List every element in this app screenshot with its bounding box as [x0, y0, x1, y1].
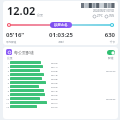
- button[interactable]: 8: [5, 89, 116, 92]
- staticText: 05'04": [51, 97, 58, 100]
- button[interactable]: 2: [5, 65, 116, 68]
- staticText: 00:27:44: [106, 69, 116, 72]
- staticText: 05'26": [51, 81, 58, 84]
- staticText: 平均配速: [6, 40, 17, 43]
- staticText: 11: [5, 101, 9, 104]
- staticText: 1: [5, 61, 9, 64]
- staticText: 05'11": [51, 65, 58, 68]
- staticText: 05'08": [51, 77, 58, 80]
- staticText: 05'16": [6, 31, 25, 39]
- staticText: 10: [5, 97, 9, 100]
- staticText: 630: [104, 31, 115, 39]
- button[interactable]: 12: [5, 105, 116, 108]
- staticText: 04'47": [51, 105, 58, 108]
- staticText: 2024/05/21 07:02: [93, 9, 115, 13]
- button[interactable]: 05'16": [6, 31, 43, 43]
- button[interactable]: 12.02: [3, 1, 118, 45]
- staticText: 12: [5, 105, 9, 108]
- staticText: 每公里配速: [14, 50, 34, 55]
- button[interactable]: 4: [5, 73, 116, 76]
- staticText: 公里: [37, 13, 43, 17]
- button[interactable]: 630: [79, 31, 115, 43]
- staticText: 4: [5, 73, 9, 76]
- button[interactable]: 6: [5, 81, 116, 84]
- button[interactable]: 10: [5, 97, 116, 100]
- staticText: 千卡: [109, 40, 115, 43]
- staticText: 05'31": [51, 101, 58, 104]
- staticText: 27°C: [97, 14, 103, 18]
- staticText: 05'22": [51, 93, 58, 96]
- staticText: 12.02: [7, 3, 36, 18]
- button[interactable]: 3: [5, 69, 116, 72]
- staticText: 3: [5, 69, 9, 72]
- staticText: 配速: [108, 56, 114, 60]
- staticText: 公里: [7, 56, 13, 60]
- staticText: 05'19": [51, 73, 58, 76]
- staticText: 00:59:05: [106, 97, 116, 100]
- button[interactable]: 1: [5, 61, 116, 64]
- staticText: 9: [5, 93, 9, 96]
- staticText: 2: [5, 65, 9, 68]
- staticText: 76%: [109, 14, 115, 18]
- staticText: 05'02": [51, 61, 58, 64]
- staticText: 6: [5, 81, 9, 84]
- staticText: 01:03:25: [49, 31, 73, 39]
- button[interactable]: 每公里配速: [6, 49, 115, 55]
- staticText: 05'15": [51, 89, 58, 92]
- staticText: 用时: [58, 40, 64, 43]
- button[interactable]: 切换配速显示: [107, 50, 115, 55]
- staticText: 04'52": [51, 85, 58, 88]
- button[interactable]: 9: [5, 93, 116, 96]
- button[interactable]: 以梦之名: [54, 23, 68, 27]
- staticText: 8: [5, 89, 9, 92]
- staticText: 以梦之名: [54, 23, 68, 27]
- button[interactable]: 以梦之名: [3, 20, 118, 30]
- staticText: 5: [5, 77, 9, 80]
- staticText: 7: [5, 85, 9, 88]
- button[interactable]: 11: [5, 101, 116, 104]
- button[interactable]: 5: [5, 77, 116, 80]
- button[interactable]: 01:03:25: [43, 31, 79, 43]
- button[interactable]: 7: [5, 85, 116, 88]
- staticText: 04'58": [51, 69, 58, 72]
